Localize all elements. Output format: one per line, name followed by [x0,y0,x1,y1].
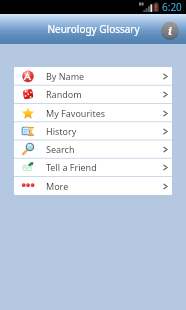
staticText: Tell a Friend [46,161,97,173]
staticText: Neurology Glossary [47,22,140,36]
button[interactable]: Tell a Friend [14,158,172,176]
staticText: Random [46,88,82,100]
staticText: i [168,23,172,38]
button[interactable]: My Favourites [14,104,172,122]
button[interactable]: More [14,177,172,195]
staticText: 6:20 [162,0,182,14]
staticText: Search [46,143,75,155]
staticText: By Name [46,70,85,82]
staticText: More [46,180,69,192]
button[interactable]: Info [161,21,179,39]
button[interactable]: Random [14,85,172,103]
staticText: History [46,125,77,137]
staticText: My Favourites [46,107,106,119]
button[interactable]: By Name [14,67,172,85]
button[interactable]: History [14,122,172,140]
button[interactable]: Search [14,140,172,158]
